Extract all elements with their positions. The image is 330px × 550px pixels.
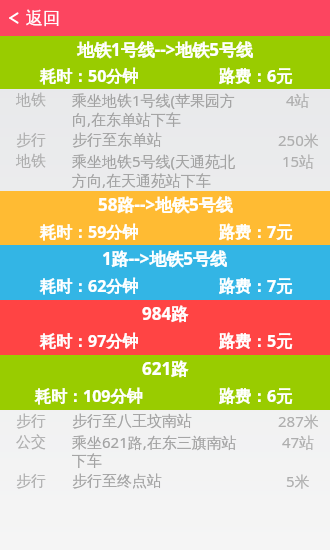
staticText: 步行至终点站 <box>72 473 162 491</box>
staticText: 耗时：59分钟 <box>40 221 139 243</box>
staticText: 5米 <box>286 473 310 492</box>
staticText: 步行至东单站 <box>72 132 162 150</box>
staticText: 耗时：62分钟 <box>40 275 139 297</box>
button[interactable]: 地铁1号线-->地铁5号线 <box>0 36 330 89</box>
staticText: 路费：7元 <box>219 221 293 243</box>
staticText: 地铁1号线-->地铁5号线 <box>77 38 254 61</box>
staticText: 47站 <box>282 434 315 453</box>
staticText: 15站 <box>282 153 315 172</box>
staticText: 地铁 <box>16 153 46 171</box>
staticText: 步行 <box>16 413 46 431</box>
staticText: 路费：6元 <box>219 65 293 87</box>
staticText: 4站 <box>286 92 310 111</box>
button[interactable]: 1路-->地铁5号线 <box>0 245 330 300</box>
staticText: 地铁 <box>16 92 46 110</box>
staticText: 乘坐地铁5号线(天通苑北方向,在天通苑站下车 <box>72 153 248 191</box>
staticText: 287米 <box>278 413 319 432</box>
staticText: 250米 <box>278 132 319 151</box>
button[interactable]: 621路 <box>0 355 330 410</box>
button[interactable]: 984路 <box>0 300 330 355</box>
staticText: 路费：5元 <box>219 330 293 352</box>
button[interactable]: 返回 <box>6 0 60 36</box>
staticText: 步行至八王坟南站 <box>72 413 192 431</box>
staticText: 耗时：50分钟 <box>40 65 139 87</box>
staticText: 621路 <box>142 357 189 380</box>
staticText: 耗时：97分钟 <box>40 330 139 352</box>
staticText: 乘坐地铁1号线(苹果园方向,在东单站下车 <box>72 92 248 130</box>
button[interactable]: 58路-->地铁5号线 <box>0 191 330 245</box>
staticText: 路费：6元 <box>219 385 293 407</box>
staticText: 984路 <box>142 302 189 325</box>
staticText: 返回 <box>26 8 60 29</box>
staticText: 公交 <box>16 434 46 452</box>
staticText: 步行 <box>16 473 46 491</box>
staticText: 路费：7元 <box>219 275 293 297</box>
staticText: 乘坐621路,在东三旗南站下车 <box>72 434 248 471</box>
staticText: 58路-->地铁5号线 <box>98 193 233 216</box>
staticText: 1路-->地铁5号线 <box>102 247 228 270</box>
staticText: 步行 <box>16 132 46 150</box>
staticText: 耗时：109分钟 <box>35 385 143 407</box>
